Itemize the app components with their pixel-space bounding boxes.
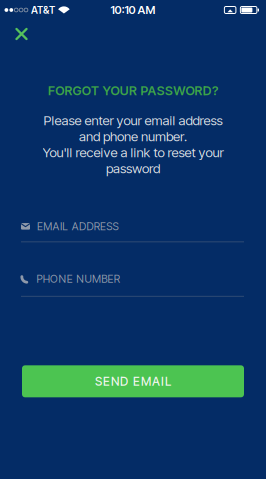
staticText: password	[106, 160, 160, 176]
staticText: You'll receive a link to reset your	[42, 144, 223, 160]
staticText: AT&T	[31, 4, 55, 16]
button[interactable]: Close	[12, 25, 30, 43]
staticText: SEND EMAIL	[95, 374, 171, 389]
button[interactable]: SEND EMAIL	[22, 365, 244, 397]
staticText: 10:10 AM	[110, 3, 155, 17]
staticText: EMAIL ADDRESS	[37, 220, 119, 233]
button[interactable]: EMAIL ADDRESS	[0, 220, 266, 242]
staticText: PHONE NUMBER	[36, 272, 120, 285]
staticText: Please enter your email address	[43, 112, 222, 128]
staticText: FORGOT YOUR PASSWORD?	[48, 83, 218, 98]
button[interactable]: PHONE NUMBER	[0, 273, 266, 297]
staticText: and phone number.	[79, 128, 187, 144]
